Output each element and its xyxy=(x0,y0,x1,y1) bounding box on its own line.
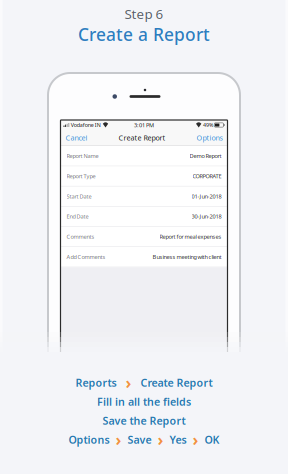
staticText: › xyxy=(125,372,131,393)
staticText: OK xyxy=(204,432,219,447)
staticText: Fill in all the fields xyxy=(97,394,191,409)
button[interactable]: Options xyxy=(196,133,222,143)
staticText: Report for meal expenses xyxy=(159,233,221,240)
button[interactable]: Yes xyxy=(169,432,186,447)
staticText: Create a Report xyxy=(78,23,210,46)
staticText: Create Report xyxy=(118,133,165,143)
staticText: Create Report xyxy=(140,375,212,390)
button[interactable]: Cancel xyxy=(65,133,87,143)
staticText: End Date xyxy=(66,213,88,220)
staticText: Reports xyxy=(75,375,116,390)
staticText: Cancel xyxy=(65,133,87,143)
staticText: 3:01 PM xyxy=(134,121,154,129)
staticText: Report Name xyxy=(66,152,98,160)
staticText: Demo Report xyxy=(189,152,221,160)
staticText: Report Type xyxy=(66,172,95,180)
staticText: › xyxy=(157,429,163,450)
staticText: Business meeting with client xyxy=(152,253,221,261)
button[interactable]: Reports xyxy=(75,375,116,390)
staticText: Save xyxy=(127,432,151,447)
button[interactable]: OK xyxy=(204,432,219,447)
staticText: Step 6 xyxy=(124,5,163,23)
staticText: Comments xyxy=(66,233,94,240)
staticText: Vodafone IN xyxy=(71,121,101,129)
staticText: › xyxy=(115,429,121,450)
staticText: Options xyxy=(68,432,109,447)
staticText: Options xyxy=(196,133,222,143)
button[interactable]: Create Report xyxy=(140,375,212,390)
staticText: 01-Jun-2018 xyxy=(191,192,221,200)
staticText: 30-Jun-2018 xyxy=(191,213,221,220)
staticText: CORPORATE xyxy=(192,172,221,180)
button[interactable]: Options xyxy=(68,432,109,447)
staticText: Add Comments xyxy=(66,253,105,261)
staticText: › xyxy=(192,429,198,450)
button[interactable]: Save xyxy=(127,432,151,447)
staticText: Yes xyxy=(169,432,186,447)
staticText: Start Date xyxy=(66,192,91,200)
staticText: Save the Report xyxy=(102,413,185,428)
staticText: 49% xyxy=(203,121,213,129)
